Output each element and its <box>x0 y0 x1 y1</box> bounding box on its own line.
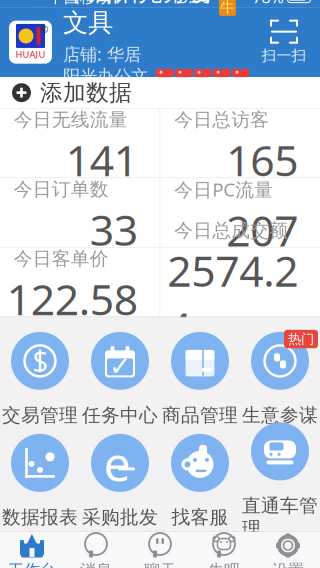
staticText: 聊天 <box>144 560 176 568</box>
staticText: HUAJU <box>15 48 45 60</box>
staticText: 78% <box>252 0 283 8</box>
button[interactable]: 添加数据 <box>0 77 320 108</box>
staticText: 牛 <box>220 0 235 16</box>
staticText: 141 <box>66 131 138 188</box>
staticText: 今日总访客 <box>174 108 269 131</box>
staticText: 33 <box>90 201 138 257</box>
button[interactable]: 设置 <box>256 532 320 568</box>
staticText: 热门 <box>288 331 314 347</box>
staticText: 数据报表 <box>2 506 78 529</box>
button[interactable]: ▲ <box>0 532 64 568</box>
button[interactable]: S <box>0 327 80 429</box>
button[interactable]: 聊天 <box>128 532 192 568</box>
staticText: 207 <box>226 202 298 258</box>
staticText: 今日无线流量 <box>14 108 128 131</box>
staticText: 直通车管理 <box>242 494 318 540</box>
button[interactable]: 商品管理 <box>160 327 240 429</box>
button[interactable]: 今日总访客 <box>160 109 320 178</box>
staticText: 今日PC流量 <box>174 177 273 202</box>
staticText: 牛吧 <box>208 560 240 568</box>
staticText: 设置 <box>272 560 304 568</box>
staticText: ▲ <box>20 526 43 559</box>
button[interactable]: 今日无线流量 <box>0 109 160 178</box>
staticText: 今日订单数 <box>14 178 109 201</box>
staticText: 添加数据 <box>40 79 132 106</box>
button[interactable]: 消息 <box>64 532 128 568</box>
button[interactable]: 找客服 <box>160 429 240 531</box>
button[interactable]: 今日客单价 <box>0 248 160 317</box>
staticText: 生意参谋 <box>242 404 318 427</box>
button[interactable]: ✓ <box>80 327 160 429</box>
button[interactable]: 今日PC流量 <box>160 178 320 247</box>
staticText: ◤ <box>117 0 128 5</box>
staticText: S <box>32 342 47 379</box>
staticText: 交易管理 <box>2 404 78 427</box>
staticText: 今日总成交额 <box>174 219 288 242</box>
staticText: ® <box>39 22 48 36</box>
staticText: ✓ <box>109 351 131 382</box>
staticText: 采购批发 <box>82 506 158 529</box>
staticText: 消息 <box>80 560 112 568</box>
button[interactable]: e <box>80 429 160 531</box>
button[interactable]: 扫一扫 <box>257 15 311 69</box>
staticText: 工作台 <box>8 560 56 568</box>
staticText: 华居阳光办公文具 <box>63 0 213 38</box>
staticText: 商品管理 <box>162 404 238 427</box>
staticText: 找客服 <box>171 506 228 529</box>
button[interactable]: 牛吧 <box>192 532 256 568</box>
button[interactable]: 数据报表 <box>0 429 80 531</box>
staticText: 任务中心 <box>82 404 158 427</box>
staticText: 122.58 <box>7 270 138 327</box>
staticText: 19:50 <box>170 0 210 8</box>
staticText: 165 <box>226 131 298 188</box>
button[interactable]: 直通车管理 <box>240 429 320 531</box>
button[interactable]: 今日总成交额 <box>160 248 320 317</box>
staticText: e <box>103 431 130 495</box>
staticText: 今日客单价 <box>14 247 109 270</box>
staticText: 扫一扫 <box>261 47 306 65</box>
button[interactable]: 热门 <box>240 327 320 429</box>
button[interactable]: 今日订单数 <box>0 178 160 247</box>
staticText: 店铺: 华居阳光办公文具 <box>63 42 148 108</box>
staticText: 中国移动 <box>48 0 112 7</box>
staticText: 2574.24 <box>167 242 298 355</box>
